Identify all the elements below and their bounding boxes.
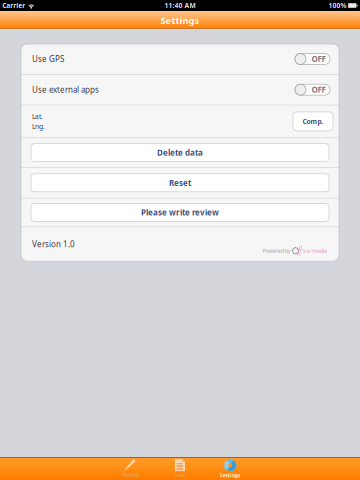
staticText: 11:40 AM <box>164 1 195 10</box>
button[interactable]: Settings <box>205 457 255 480</box>
button[interactable]: Delete data <box>21 138 339 167</box>
staticText: Comp. <box>302 117 323 126</box>
staticText: Carrier <box>2 1 25 10</box>
staticText: Version 1.0 <box>32 239 75 249</box>
button[interactable]: Comp. <box>293 112 333 131</box>
staticText: Please write review <box>141 207 219 218</box>
staticText: Record <box>121 471 138 478</box>
button[interactable]: Record <box>105 457 155 480</box>
button[interactable]: Use GPS <box>21 44 339 74</box>
staticText: ice-media <box>303 247 327 254</box>
staticText: Delete data <box>157 147 203 158</box>
staticText: List <box>175 471 185 479</box>
staticText: OFF <box>312 84 326 95</box>
staticText: Reset <box>169 177 191 188</box>
staticText: 100% <box>329 1 347 10</box>
staticText: Powered by <box>263 247 291 254</box>
staticText: Settings <box>160 14 199 27</box>
button[interactable]: Reset <box>21 168 339 198</box>
button[interactable]: Use external apps <box>21 75 339 105</box>
button[interactable]: List <box>155 457 205 480</box>
staticText: Use GPS <box>32 54 64 64</box>
staticText: Lat. <box>32 112 43 121</box>
staticText: Use external apps <box>32 84 99 95</box>
staticText: Lng. <box>32 122 45 131</box>
staticText: Settings <box>219 472 240 479</box>
staticText: OFF <box>312 54 326 64</box>
button[interactable]: Please write review <box>21 198 339 226</box>
